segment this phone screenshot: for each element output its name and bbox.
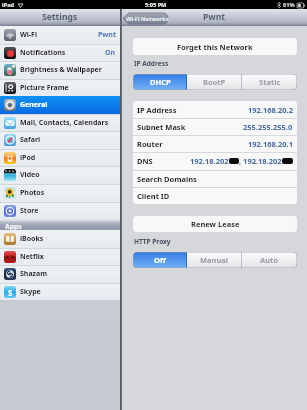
button[interactable]: S (0, 283, 120, 300)
staticText: Picture Frame (20, 83, 69, 93)
button[interactable]: Safari (0, 131, 120, 149)
staticText: Router (137, 139, 163, 149)
staticText: Notifications (20, 48, 66, 58)
staticText: 192.168.20.2 (248, 105, 293, 115)
staticText: S (8, 287, 13, 298)
staticText: iPad (2, 1, 15, 9)
button[interactable]: Notifications (0, 44, 120, 61)
button[interactable]: Auto (242, 252, 297, 268)
staticText: 61% (283, 1, 295, 9)
staticText: HTTP Proxy (134, 237, 297, 246)
button[interactable]: IP Address (133, 101, 297, 118)
staticText: 192.18.202 (190, 156, 229, 166)
staticText: IP Address (137, 105, 177, 115)
staticText: iPod (20, 153, 36, 163)
button[interactable]: Wi-Fi (0, 26, 120, 44)
button[interactable]: Subnet Mask (133, 118, 297, 135)
button[interactable]: Mail, Contacts, Calendars (0, 114, 120, 131)
staticText: Wi-Fi Networks (126, 15, 169, 23)
staticText: Netflix (20, 252, 44, 262)
staticText: DNS (137, 156, 153, 166)
button[interactable]: Manual (187, 252, 242, 268)
staticText: DHCP (150, 77, 171, 87)
button[interactable]: Client ID (133, 187, 297, 204)
staticText: Wi-Fi (20, 30, 38, 40)
staticText: BootP (203, 77, 226, 87)
button[interactable]: DHCP (133, 74, 187, 90)
staticText: Skype (20, 287, 41, 297)
staticText: Pwnt (203, 11, 226, 23)
staticText: Renew Lease (191, 219, 240, 229)
button[interactable]: BootP (187, 74, 242, 90)
button[interactable]: Wi-Fi Networks (123, 13, 168, 24)
staticText: Client ID (137, 191, 170, 201)
staticText: Search Domains (137, 174, 197, 184)
button[interactable]: Renew Lease (133, 216, 297, 232)
button[interactable]: Photos (0, 184, 120, 202)
button[interactable]: Netflix (0, 248, 120, 265)
staticText: Shazam (20, 269, 48, 279)
staticText: , 192.18.202 (239, 156, 282, 166)
staticText: Apps (5, 222, 22, 231)
staticText: IP Address (134, 59, 297, 68)
button[interactable]: Off (133, 252, 187, 268)
staticText: 192.168.20.1 (248, 139, 293, 149)
staticText: Safari (20, 135, 41, 145)
staticText: Off (154, 255, 166, 265)
staticText: 5:05 PM (145, 1, 167, 9)
button[interactable]: Store (0, 202, 120, 219)
staticText: Video (20, 170, 40, 180)
button[interactable]: General (0, 96, 120, 114)
button[interactable]: iBooks (0, 230, 120, 248)
staticText: Subnet Mask (137, 122, 186, 132)
button[interactable]: Router (133, 135, 297, 152)
staticText: Manual (200, 255, 229, 265)
button[interactable]: Shazam (0, 265, 120, 283)
button[interactable]: Picture Frame (0, 79, 120, 96)
staticText: Auto (260, 255, 279, 265)
staticText: 255.255.255.0 (243, 122, 293, 132)
button[interactable]: Static (242, 74, 297, 90)
staticText: Photos (20, 188, 45, 198)
staticText: Pwnt (98, 30, 116, 40)
button[interactable]: Search Domains (133, 170, 297, 187)
button[interactable]: Brightness & Wallpaper (0, 61, 120, 79)
button[interactable]: DNS (133, 152, 297, 170)
staticText: Forget this Network (177, 42, 253, 52)
staticText: Brightness & Wallpaper (20, 65, 102, 75)
staticText: Mail, Contacts, Calendars (20, 118, 109, 128)
button[interactable]: Video (0, 166, 120, 184)
staticText: iBooks (20, 234, 44, 244)
button[interactable]: Forget this Network (133, 38, 297, 55)
staticText: General (20, 100, 48, 110)
staticText: Static (259, 77, 281, 87)
button[interactable]: iPod (0, 149, 120, 166)
staticText: On (105, 48, 116, 58)
staticText: Store (20, 206, 39, 216)
staticText: Settings (42, 11, 78, 23)
